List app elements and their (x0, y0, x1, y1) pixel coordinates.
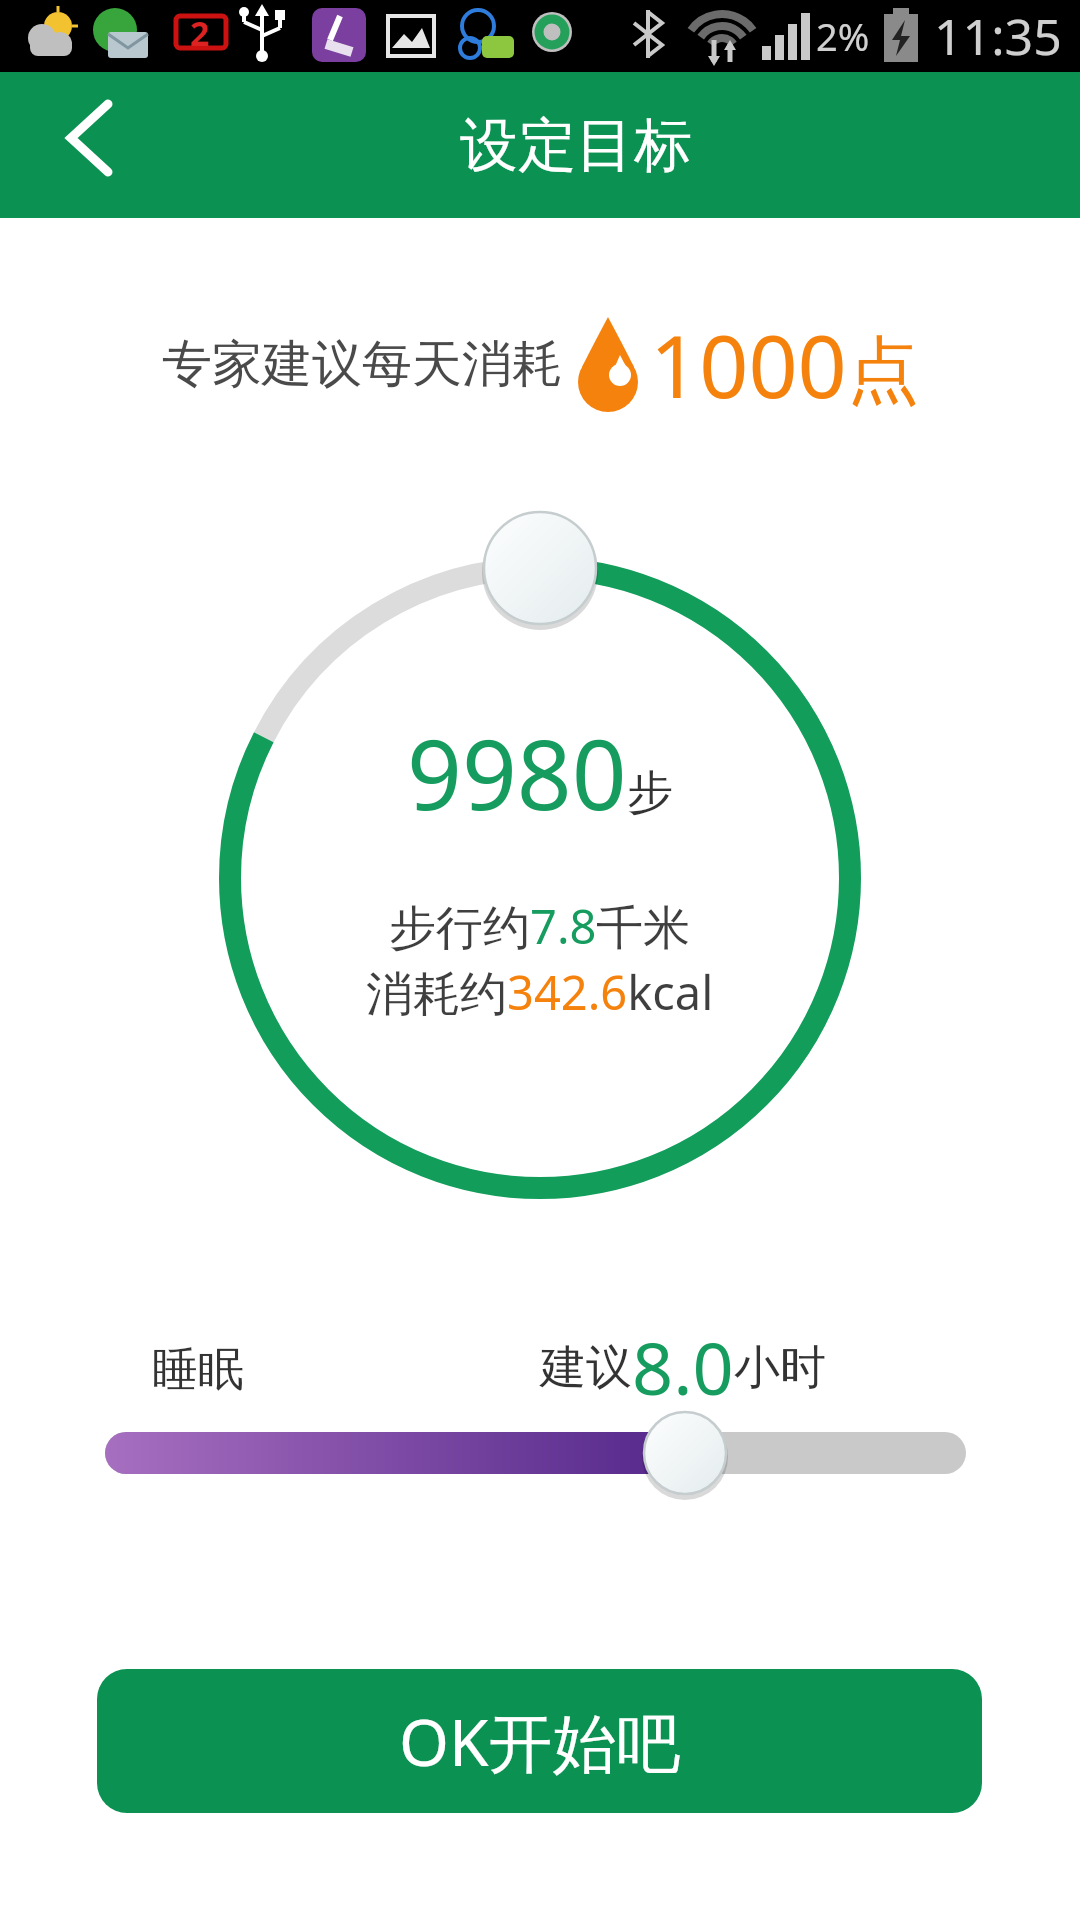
staticText: 2 (190, 10, 210, 56)
button[interactable] (484, 512, 596, 624)
staticText: 8.0 (632, 1318, 734, 1416)
staticText: 11:35 (934, 2, 1062, 70)
button[interactable]: OK开始吧 (97, 1669, 982, 1813)
staticText: 步行约7.8千米 (389, 894, 691, 958)
staticText: 步 (627, 764, 673, 822)
staticText: 消耗约342.6kcal (366, 960, 714, 1024)
staticText: 2% (816, 10, 870, 62)
staticText: 9980 (407, 707, 627, 838)
staticText: 设定目标 (460, 109, 692, 182)
staticText: 1000 (650, 306, 847, 423)
staticText: OK开始吧 (399, 1698, 681, 1785)
staticText: 小时 (734, 1339, 826, 1397)
staticText: 睡眠 (152, 1341, 244, 1399)
staticText: 专家建议每天消耗 (162, 333, 562, 396)
button[interactable] (644, 1412, 726, 1494)
staticText: 点 (847, 326, 919, 417)
button[interactable] (40, 100, 130, 190)
staticText: 建议 (540, 1339, 632, 1397)
